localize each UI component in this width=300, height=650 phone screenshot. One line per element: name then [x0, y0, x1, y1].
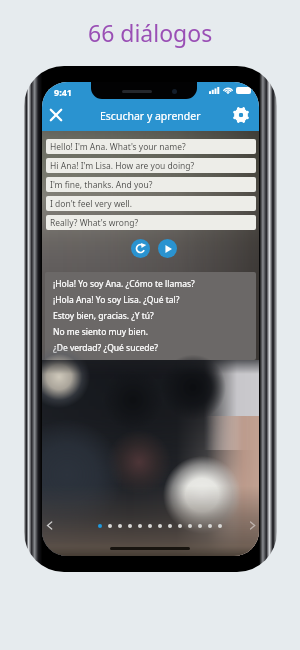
button[interactable]: No me siento muy bien.	[53, 324, 148, 340]
button[interactable]: Really? What's wrong?	[46, 215, 256, 230]
staticText: ¿De verdad? ¿Qué sucede?	[53, 342, 158, 354]
staticText: Hello! I'm Ana. What's your name?	[50, 141, 186, 153]
button[interactable]: ¡Hola Ana! Yo soy Lisa. ¿Qué tal?	[53, 292, 180, 308]
button[interactable]: Previous	[44, 520, 55, 531]
staticText: I'm fine, thanks. And you?	[50, 179, 153, 191]
staticText: No me siento muy bien.	[53, 326, 148, 338]
staticText: 9:41	[54, 86, 72, 98]
button[interactable]: Repeat	[131, 239, 150, 258]
button[interactable]: ¡Hola! Yo soy Ana. ¿Cómo te llamas?	[53, 276, 195, 292]
staticText: I don't feel very well.	[50, 198, 133, 210]
staticText: ¡Hola! Yo soy Ana. ¿Cómo te llamas?	[53, 278, 195, 290]
staticText: Hi Ana! I'm Lisa. How are you doing?	[50, 160, 195, 172]
button[interactable]: I'm fine, thanks. And you?	[46, 177, 256, 192]
button[interactable]: Next	[247, 520, 258, 531]
button[interactable]: Close	[50, 109, 62, 121]
button[interactable]: Escuchar y aprender	[100, 109, 201, 123]
button[interactable]: I don't feel very well.	[46, 196, 256, 211]
staticText: Really? What's wrong?	[50, 217, 139, 229]
staticText: 66 diálogos	[88, 17, 213, 48]
staticText: Estoy bien, gracias. ¿Y tú?	[53, 310, 154, 322]
button[interactable]: Estoy bien, gracias. ¿Y tú?	[53, 308, 154, 324]
button[interactable]: Hi Ana! I'm Lisa. How are you doing?	[46, 158, 256, 173]
button[interactable]: Settings	[234, 108, 248, 122]
button[interactable]: Hello! I'm Ana. What's your name?	[46, 139, 256, 154]
button[interactable]: ¿De verdad? ¿Qué sucede?	[53, 340, 158, 356]
button[interactable]: Play	[158, 239, 177, 258]
staticText: ¡Hola Ana! Yo soy Lisa. ¿Qué tal?	[53, 294, 180, 306]
